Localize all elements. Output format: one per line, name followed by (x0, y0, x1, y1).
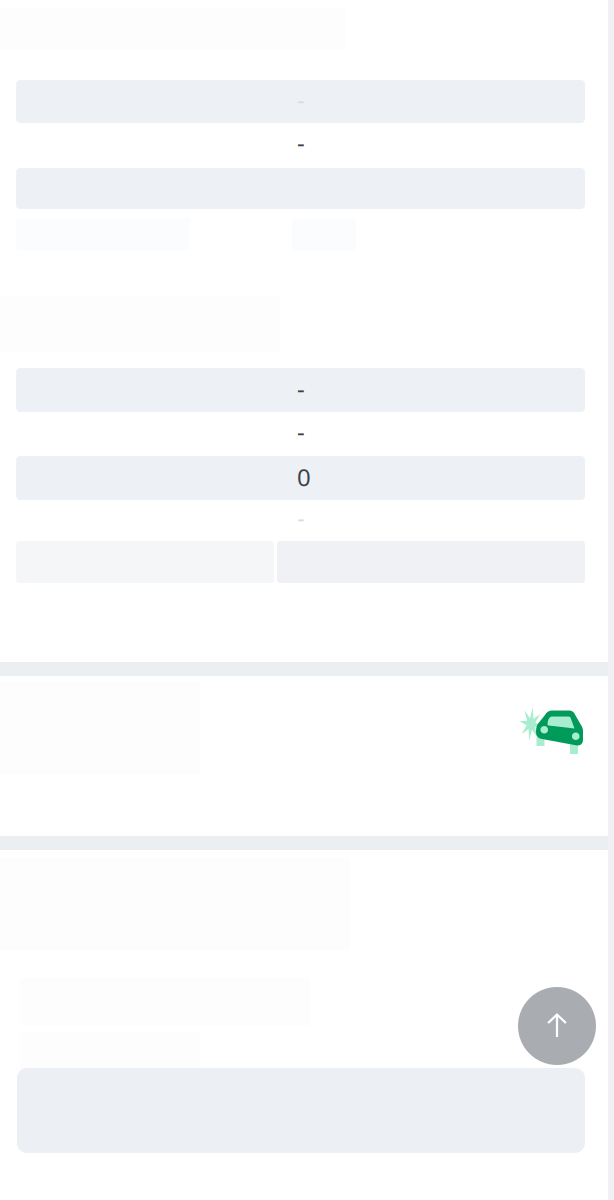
staticText: - (297, 83, 305, 115)
staticText: - (297, 126, 305, 158)
staticText: - (297, 415, 305, 447)
staticText: - (297, 372, 305, 404)
staticText: - (297, 501, 305, 533)
staticText: 0 (297, 461, 311, 493)
button[interactable] (0, 1068, 608, 1153)
button[interactable]: Scroll to top (518, 987, 596, 1065)
